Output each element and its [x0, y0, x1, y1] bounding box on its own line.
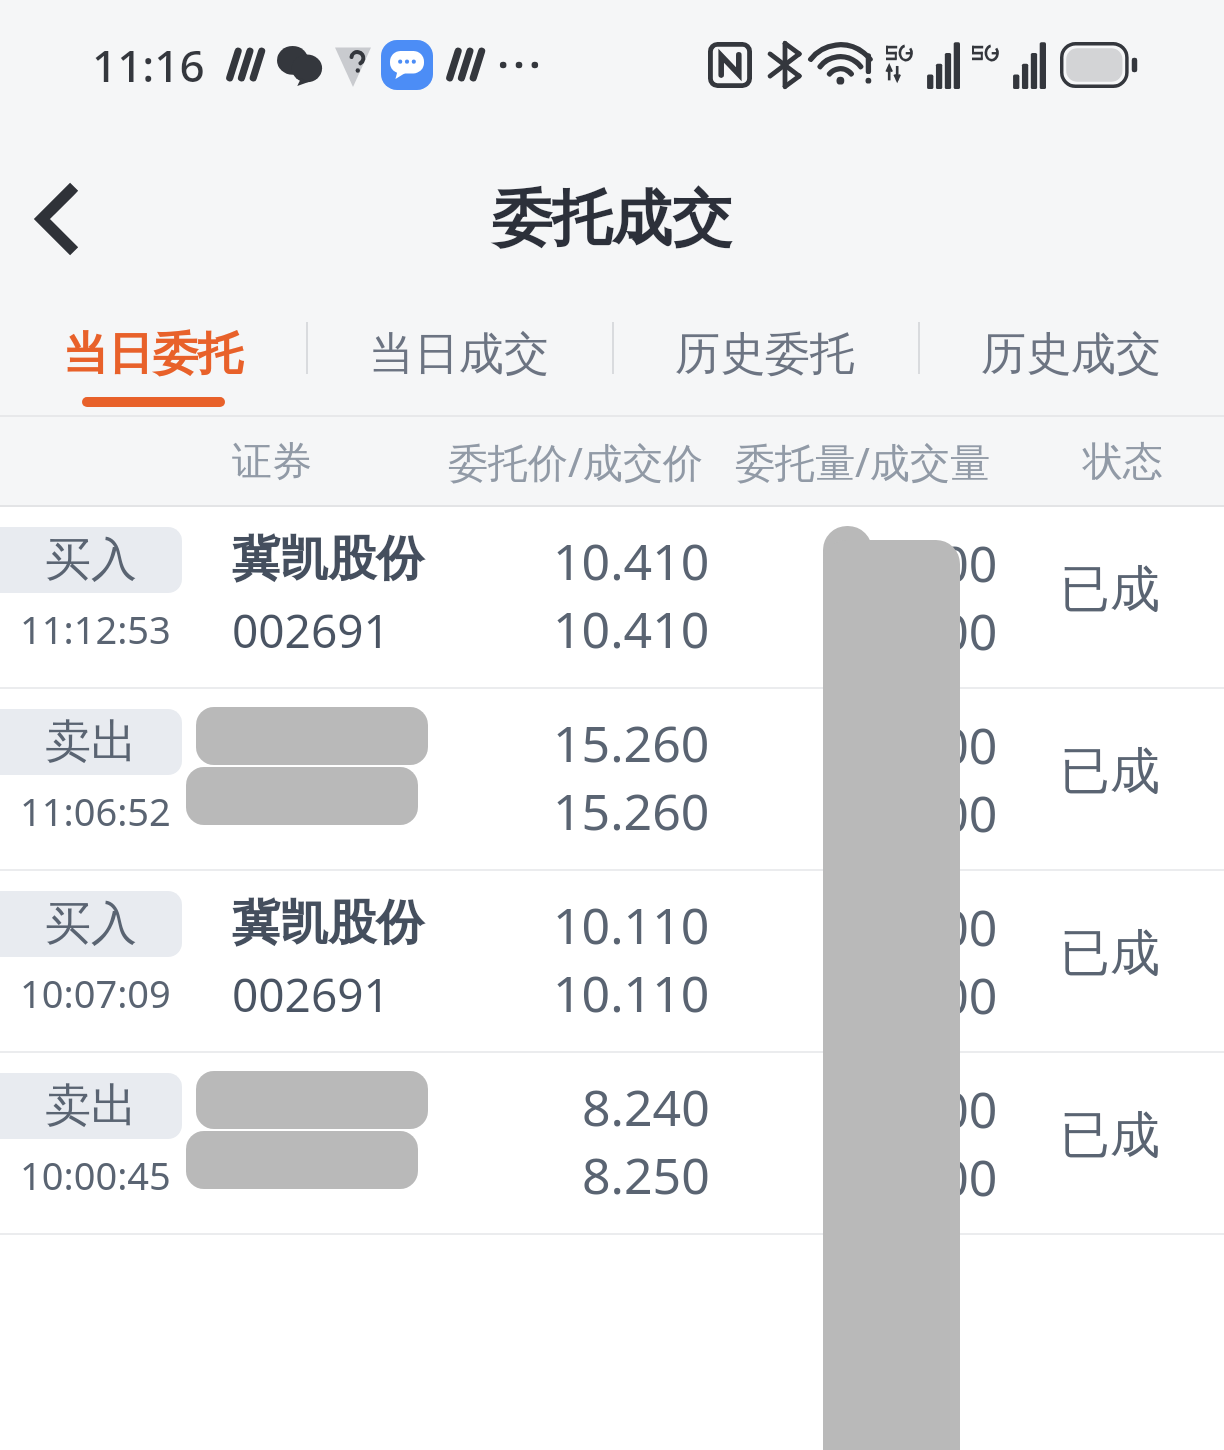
staticText: 冀凯股份 [232, 893, 424, 953]
staticText: 当日委托 [63, 326, 243, 383]
staticText: 002691 [232, 963, 390, 1026]
button[interactable]: 卖出 [0, 689, 1224, 869]
button[interactable]: 卖出 [0, 1053, 1224, 1233]
staticText: 10.110 [553, 891, 710, 959]
staticText: 历史成交 [981, 326, 1161, 383]
staticText: 卖出 [45, 1077, 137, 1135]
staticText: 11:06:52 [20, 785, 171, 837]
staticText: 11:12:53 [20, 603, 171, 655]
staticText: 10:00:45 [20, 1149, 171, 1201]
staticText: 15.260 [553, 777, 710, 845]
staticText: 8.240 [582, 1073, 710, 1141]
button[interactable]: Back [8, 171, 104, 267]
staticText: 3600 [883, 711, 998, 779]
staticText: 3600 [883, 893, 998, 961]
staticText: 已成 [1060, 1104, 1160, 1167]
button[interactable]: 当日成交 [306, 308, 612, 415]
staticText: 10.410 [553, 595, 710, 663]
staticText: 委托量/成交量 [735, 434, 990, 489]
button[interactable]: 历史成交 [918, 308, 1224, 415]
staticText: 15.260 [553, 709, 710, 777]
staticText: 状态 [1083, 436, 1163, 486]
staticText: 买入 [45, 895, 137, 953]
staticText: 委托价/成交价 [448, 434, 703, 489]
staticText: 10:07:09 [20, 967, 171, 1019]
staticText: 3600 [883, 779, 998, 847]
staticText: 卖出 [45, 713, 137, 771]
staticText: 证券 [232, 436, 312, 486]
button[interactable]: 历史委托 [612, 308, 918, 415]
staticText: 历史委托 [675, 326, 855, 383]
staticText: 10.410 [553, 527, 710, 595]
staticText: 冀凯股份 [232, 529, 424, 589]
staticText: 10.110 [553, 959, 710, 1027]
staticText: 8.250 [582, 1141, 710, 1209]
staticText: 3600 [883, 1143, 998, 1211]
staticText: 当日成交 [369, 326, 549, 383]
staticText: 3600 [883, 961, 998, 1029]
staticText: 11:16 [92, 35, 205, 95]
button[interactable]: 买入 [0, 871, 1224, 1051]
staticText: 3600 [883, 1075, 998, 1143]
button[interactable]: 当日委托 [0, 308, 306, 415]
staticText: 已成 [1060, 922, 1160, 985]
staticText: 已成 [1060, 740, 1160, 803]
staticText: 已成 [1060, 558, 1160, 621]
button[interactable]: 买入 [0, 507, 1224, 687]
staticText: 3600 [883, 597, 998, 665]
staticText: 002691 [232, 599, 390, 662]
staticText: 委托成交 [492, 181, 732, 257]
staticText: 买入 [45, 531, 137, 589]
staticText: 3600 [883, 529, 998, 597]
